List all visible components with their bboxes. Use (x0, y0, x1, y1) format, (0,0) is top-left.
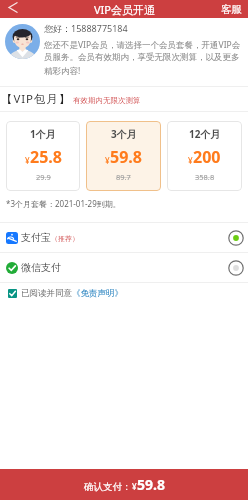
staticText: 支付宝 (21, 231, 51, 244)
button[interactable]: Back (0, 0, 20, 18)
staticText: 200 (193, 146, 221, 168)
staticText: 您好：15888775184 (44, 22, 128, 34)
staticText: 3个月 (111, 127, 137, 141)
button[interactable]: 客服 (221, 3, 248, 16)
button[interactable]: 已阅读并同意 (0, 283, 248, 304)
staticText: ¥ (132, 481, 137, 492)
staticText: 《免责声明》 (72, 288, 123, 299)
staticText: 您还不是VIP会员，请选择一个会员套餐，开通VIP会员服务。会员有效期内，享受无… (44, 39, 245, 76)
button[interactable]: 1个月 (6, 121, 80, 191)
staticText: 1个月 (30, 127, 56, 141)
button[interactable]: 确认支付： (0, 469, 248, 500)
staticText: ¥ (25, 155, 30, 166)
staticText: 29.9 (36, 172, 51, 182)
staticText: ¥ (188, 155, 193, 166)
staticText: 客服 (221, 3, 242, 16)
staticText: 12个月 (189, 127, 221, 141)
button[interactable]: 12个月 (167, 121, 242, 191)
staticText: 358.8 (195, 172, 215, 182)
staticText: 25.8 (30, 146, 62, 168)
staticText: 59.8 (137, 475, 165, 494)
button[interactable]: 微信支付 (0, 253, 248, 282)
staticText: 已阅读并同意 (21, 288, 72, 299)
staticText: 89.7 (116, 172, 131, 182)
staticText: 59.8 (110, 146, 142, 168)
staticText: VIP会员开通 (94, 2, 155, 17)
staticText: 有效期内无限次测算 (73, 96, 141, 105)
staticText: 微信支付 (21, 261, 61, 274)
button[interactable]: 3个月 (86, 121, 161, 191)
staticText: 确认支付： (84, 481, 132, 493)
button[interactable]: 支付宝 (0, 223, 248, 252)
staticText: *3个月套餐：2021-01-29到期。 (6, 198, 121, 209)
staticText: （推荐） (51, 234, 79, 243)
staticText: 【VIP包月】 (1, 91, 72, 107)
staticText: ¥ (105, 155, 110, 166)
